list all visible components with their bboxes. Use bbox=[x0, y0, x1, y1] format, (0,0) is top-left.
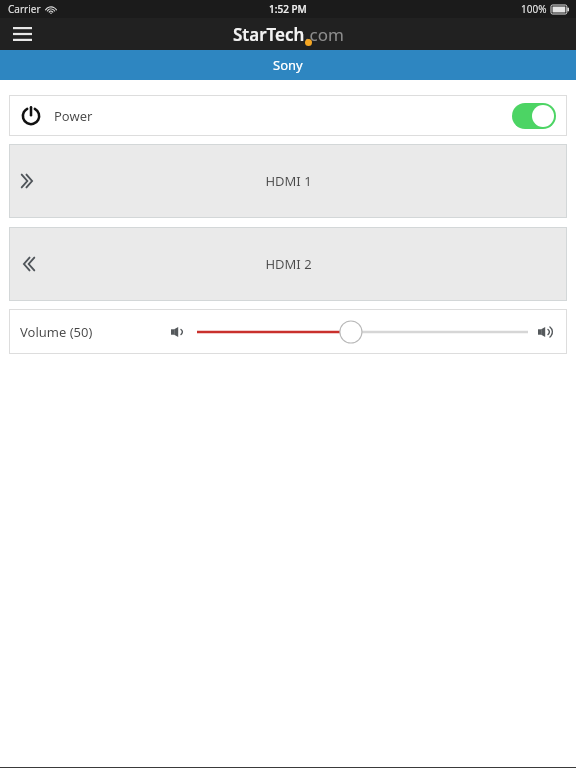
button[interactable]: Power toggle bbox=[512, 103, 556, 129]
button[interactable]: Volume slider bbox=[197, 320, 528, 344]
button[interactable]: Menu bbox=[6, 18, 38, 50]
button[interactable]: HDMI 2 bbox=[9, 227, 567, 301]
staticText: Power bbox=[54, 107, 93, 125]
staticText: 1:52 PM bbox=[269, 2, 307, 16]
button[interactable]: HDMI 1 bbox=[9, 144, 567, 218]
staticText: Volume (50) bbox=[20, 323, 93, 341]
staticText: Sony bbox=[273, 56, 303, 74]
button[interactable]: Sony bbox=[0, 50, 576, 80]
staticText: Carrier bbox=[8, 2, 41, 16]
button[interactable]: Power bbox=[9, 95, 567, 136]
staticText: HDMI 2 bbox=[265, 255, 312, 273]
staticText: 100% bbox=[521, 2, 547, 16]
staticText: HDMI 1 bbox=[265, 172, 312, 190]
staticText: StarTech bbox=[233, 23, 305, 46]
staticText: .com bbox=[305, 23, 344, 46]
